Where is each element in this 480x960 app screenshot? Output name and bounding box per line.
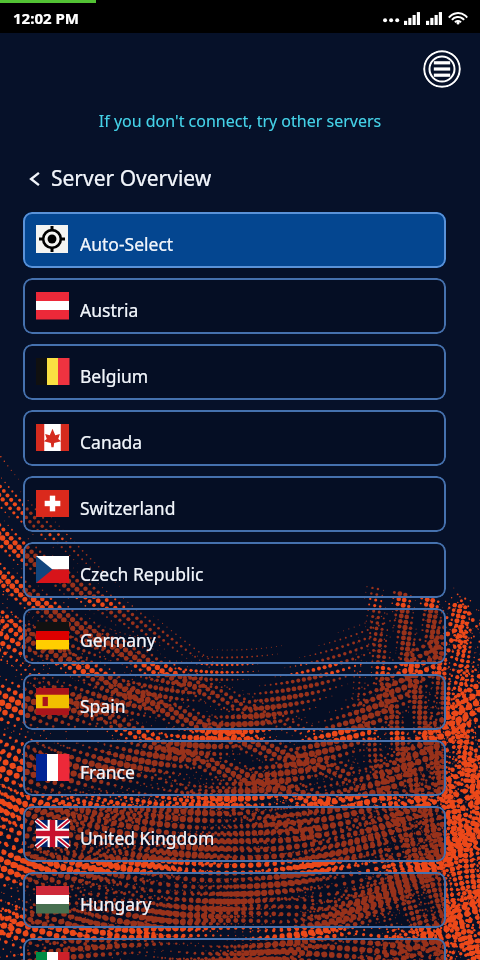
button[interactable]: Canada [23, 410, 446, 466]
staticText: Italy [80, 958, 116, 960]
button[interactable]: Germany [23, 608, 446, 664]
staticText: United Kingdom [80, 826, 215, 850]
staticText: Server Overview [51, 164, 212, 193]
button[interactable]: Czech Republic [23, 542, 446, 598]
staticText: 12:02 PM [13, 8, 79, 28]
button[interactable]: Server Overview [28, 164, 212, 193]
button[interactable]: Hungary [23, 872, 446, 928]
button[interactable]: Belgium [23, 344, 446, 400]
staticText: Belgium [80, 364, 149, 388]
staticText: Switzerland [80, 496, 176, 520]
staticText: Hungary [80, 892, 152, 916]
staticText: France [80, 760, 135, 784]
staticText: Spain [80, 694, 126, 718]
button[interactable]: Menu [423, 50, 461, 88]
button[interactable]: France [23, 740, 446, 796]
button[interactable]: Spain [23, 674, 446, 730]
staticText: Auto-Select [80, 232, 174, 256]
staticText: Austria [80, 298, 139, 322]
button[interactable]: Switzerland [23, 476, 446, 532]
staticText: Germany [80, 628, 156, 652]
button[interactable]: United Kingdom [23, 806, 446, 862]
staticText: If you don't connect, try other servers [0, 110, 480, 132]
staticText: Czech Republic [80, 562, 204, 586]
button[interactable]: Auto-Select [23, 212, 446, 268]
button[interactable]: Austria [23, 278, 446, 334]
staticText: Canada [80, 430, 143, 454]
button[interactable]: Italy [23, 938, 446, 960]
